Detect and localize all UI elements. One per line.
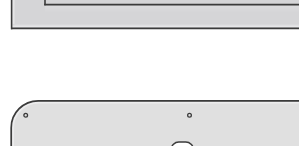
button[interactable]: Device preview card xyxy=(11,98,299,146)
button[interactable]: Device preview card xyxy=(11,0,299,31)
